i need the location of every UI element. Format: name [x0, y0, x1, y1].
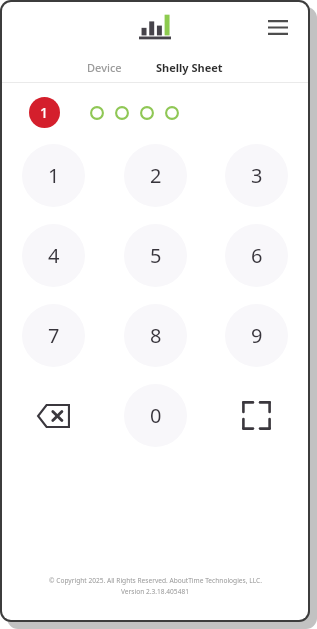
staticText: 9 — [251, 322, 263, 349]
staticText: Shelly Sheet — [156, 60, 223, 75]
staticText: 7 — [48, 322, 60, 349]
button[interactable]: Menu — [262, 11, 294, 43]
staticText: © Copyright 2025. All Rights Reserved. A… — [49, 576, 262, 585]
staticText: Device — [87, 60, 122, 75]
button[interactable]: 0 — [124, 384, 187, 447]
button[interactable]: 3 — [225, 144, 288, 207]
button[interactable]: Scan barcode — [225, 384, 288, 447]
staticText: 8 — [150, 322, 162, 349]
staticText: Version 2.3.18.405481 — [121, 587, 189, 596]
staticText: 4 — [48, 242, 60, 269]
staticText: 1 — [48, 162, 60, 189]
button[interactable]: 8 — [124, 304, 187, 367]
button[interactable]: Shelly Sheet — [145, 57, 234, 78]
button[interactable]: 7 — [22, 304, 85, 367]
button[interactable]: 5 — [124, 224, 187, 287]
button[interactable]: 6 — [225, 224, 288, 287]
button[interactable]: Backspace — [22, 384, 85, 447]
staticText: 1 — [40, 103, 49, 122]
button[interactable]: 1 — [29, 97, 60, 128]
staticText: 5 — [150, 242, 162, 269]
staticText: 3 — [251, 162, 263, 189]
button[interactable]: Device — [76, 57, 133, 78]
staticText: 0 — [150, 402, 162, 429]
staticText: 2 — [150, 162, 162, 189]
button[interactable]: 9 — [225, 304, 288, 367]
button[interactable]: 4 — [22, 224, 85, 287]
staticText: 6 — [251, 242, 263, 269]
button[interactable]: 1 — [22, 144, 85, 207]
button[interactable]: 2 — [124, 144, 187, 207]
